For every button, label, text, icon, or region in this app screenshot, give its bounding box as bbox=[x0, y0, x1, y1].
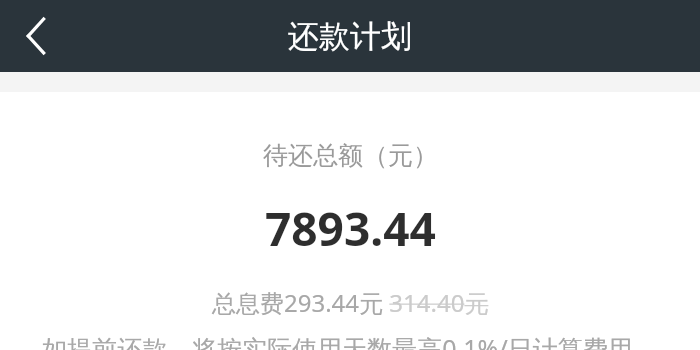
staticText: 还款计划 bbox=[288, 17, 412, 56]
staticText: 总息费293.44元 314.40元 bbox=[212, 286, 489, 319]
button[interactable]: Back bbox=[8, 8, 64, 64]
staticText: 待还总额（元） bbox=[263, 140, 438, 171]
staticText: 如提前还款，将按实际使用天数最高0.1%/日计算费用，最高不超过总息费 bbox=[30, 331, 670, 350]
staticText: 7893.44 bbox=[265, 197, 436, 260]
